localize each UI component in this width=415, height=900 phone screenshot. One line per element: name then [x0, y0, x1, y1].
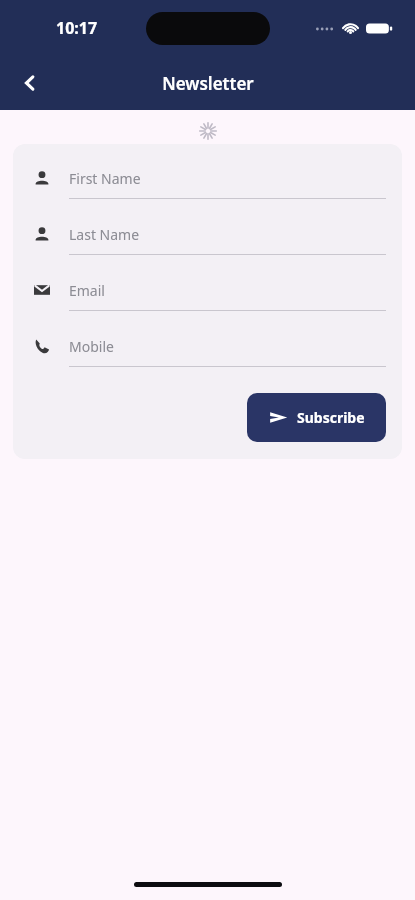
staticText: Mobile — [69, 337, 114, 356]
staticText: First Name — [69, 169, 141, 188]
staticText: Last Name — [69, 225, 140, 244]
staticText: 10:17 — [56, 17, 98, 39]
staticText: Subscribe — [297, 408, 365, 427]
staticText: Email — [69, 281, 105, 300]
button[interactable]: Back — [10, 63, 50, 103]
staticText: Newsletter — [162, 72, 254, 95]
button[interactable]: Subscribe — [247, 393, 386, 442]
